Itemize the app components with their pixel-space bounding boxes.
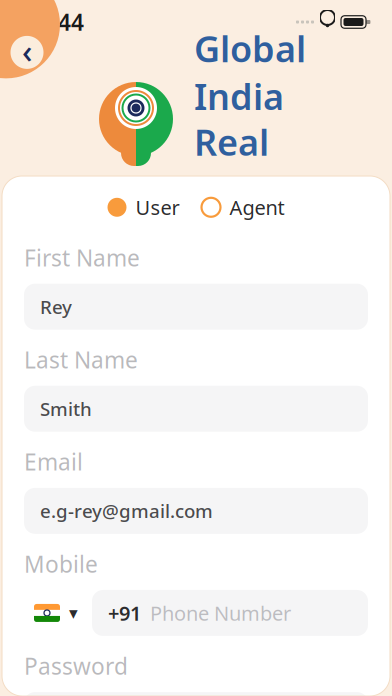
staticText: ‹ (22, 30, 32, 72)
staticText: Agent (229, 194, 284, 221)
button[interactable]: Agent (201, 188, 284, 227)
staticText: User (135, 194, 179, 221)
button[interactable]: Rey (24, 284, 368, 330)
staticText: Mobile (24, 549, 98, 579)
button[interactable]: e.g-rey@gmail.com (24, 488, 368, 534)
button[interactable]: * * * * * * * (24, 692, 368, 696)
button[interactable]: Back (5, 30, 49, 74)
button[interactable]: User (107, 188, 179, 227)
staticText: Password (24, 651, 128, 681)
staticText: e.g-rey@gmail.com (40, 498, 213, 523)
button[interactable]: Select country code (24, 590, 88, 636)
button[interactable]: +91 (92, 590, 368, 636)
staticText: Last Name (24, 345, 138, 375)
staticText: Email (24, 447, 83, 477)
staticText: ▾ (69, 603, 78, 623)
staticText: First Name (24, 243, 140, 273)
staticText: Real Estate (194, 118, 304, 214)
staticText: Global India (194, 24, 306, 120)
staticText: Smith (40, 396, 92, 421)
button[interactable]: Smith (24, 386, 368, 432)
staticText: +91 (108, 600, 141, 626)
staticText: Rey (40, 294, 72, 319)
staticText: 10:44 (26, 7, 84, 37)
staticText: Phone Number (150, 600, 291, 626)
